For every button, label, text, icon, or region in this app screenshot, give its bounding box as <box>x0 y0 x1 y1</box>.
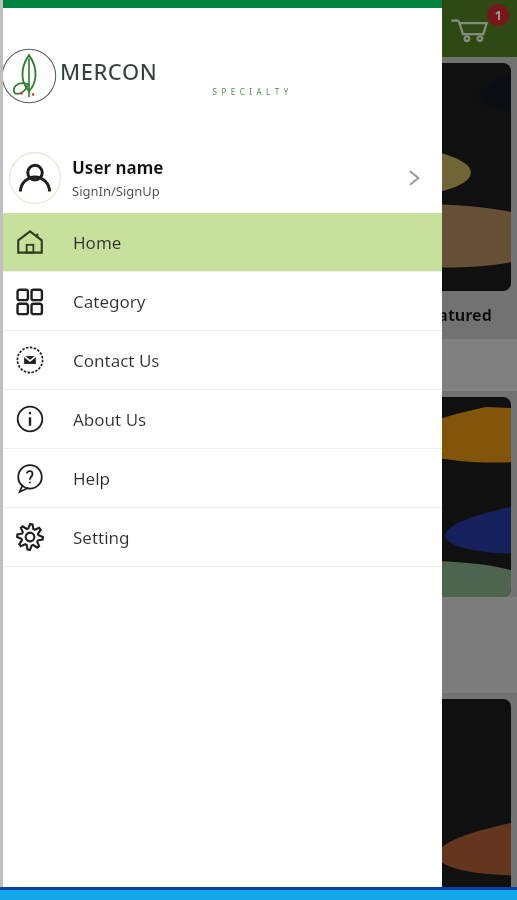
other: Setting <box>16 523 44 551</box>
staticText: S P E C I A L T Y <box>60 86 442 97</box>
staticText: MERCON <box>60 56 158 86</box>
staticText: Featured <box>420 304 492 326</box>
staticText: 1 <box>495 7 502 23</box>
button[interactable]: Contact Us <box>0 331 442 389</box>
staticText: Home <box>73 231 122 254</box>
staticText: SignIn/SignUp <box>72 182 160 200</box>
button[interactable] <box>6 699 511 899</box>
button[interactable] <box>6 63 511 291</box>
staticText: Setting <box>73 526 130 549</box>
other: Contact Us <box>16 346 44 374</box>
button[interactable]: Help <box>0 449 442 507</box>
button[interactable] <box>6 397 511 597</box>
button[interactable]: Setting <box>0 508 442 566</box>
staticText: Help <box>73 467 111 490</box>
other: Open profile <box>402 166 426 190</box>
button[interactable]: About Us <box>0 390 442 448</box>
staticText: Category <box>73 290 146 313</box>
button[interactable]: Home <box>0 213 442 271</box>
button[interactable]: User name <box>0 143 442 213</box>
button[interactable]: Cart <box>448 8 490 50</box>
other: Home <box>16 228 44 256</box>
button[interactable]: Category <box>0 272 442 330</box>
other: Help <box>16 464 44 492</box>
staticText: Contact Us <box>73 349 160 372</box>
other: Category <box>16 287 44 315</box>
staticText: User name <box>72 156 164 179</box>
staticText: About Us <box>73 408 147 431</box>
other: About Us <box>16 405 44 433</box>
